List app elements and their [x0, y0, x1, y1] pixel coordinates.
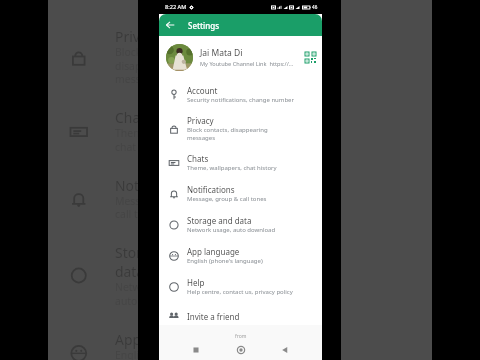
button[interactable]: Invite a friend — [159, 302, 322, 330]
staticText: Theme, wallpapers, chat history — [187, 164, 277, 172]
button[interactable]: Back — [164, 19, 176, 31]
staticText: Network usage, auto download — [187, 226, 276, 234]
button[interactable]: Storage and data — [159, 209, 322, 240]
button[interactable]: Privacy — [159, 110, 322, 147]
button[interactable]: Back — [278, 343, 292, 357]
staticText: Help centre, contact us, privacy policy — [187, 288, 293, 296]
button[interactable]: Notifications — [159, 178, 322, 209]
staticText: My Youtube Channel Link https://... — [200, 60, 294, 68]
staticText: Block contacts, disappearing messages — [187, 126, 268, 142]
staticText: Notifications — [115, 175, 138, 194]
button[interactable]: Account — [159, 79, 322, 110]
staticText: from — [235, 333, 247, 340]
staticText: Message, group & call tones — [187, 195, 267, 203]
staticText: Privacy — [187, 115, 214, 126]
staticText: Storage and data — [115, 243, 138, 281]
button[interactable]: Home — [234, 343, 248, 357]
button[interactable]: Chats — [159, 147, 322, 178]
staticText: Chats — [115, 108, 138, 127]
staticText: Jai Mata Di — [200, 47, 243, 59]
staticText: Invite a friend — [187, 311, 240, 322]
staticText: App language — [115, 329, 138, 348]
button[interactable]: Recent apps — [189, 343, 203, 357]
button[interactable]: QR code — [305, 52, 316, 63]
staticText: Account — [187, 85, 218, 96]
staticText: App language — [187, 246, 240, 257]
button[interactable]: Help — [159, 271, 322, 302]
button[interactable]: App language — [159, 240, 322, 271]
staticText: Help — [187, 277, 205, 288]
staticText: Storage and data — [187, 215, 252, 226]
staticText: Chats — [187, 153, 209, 164]
staticText: Privacy — [115, 26, 138, 45]
button[interactable]: Jai Mata Di — [159, 36, 322, 79]
staticText: Security notifications, change number — [187, 96, 294, 104]
staticText: 8:22 AM — [165, 3, 187, 11]
staticText: Notifications — [187, 184, 235, 195]
staticText: 46 — [312, 4, 318, 10]
staticText: Settings — [188, 20, 220, 31]
staticText: English (phone's language) — [187, 257, 263, 265]
